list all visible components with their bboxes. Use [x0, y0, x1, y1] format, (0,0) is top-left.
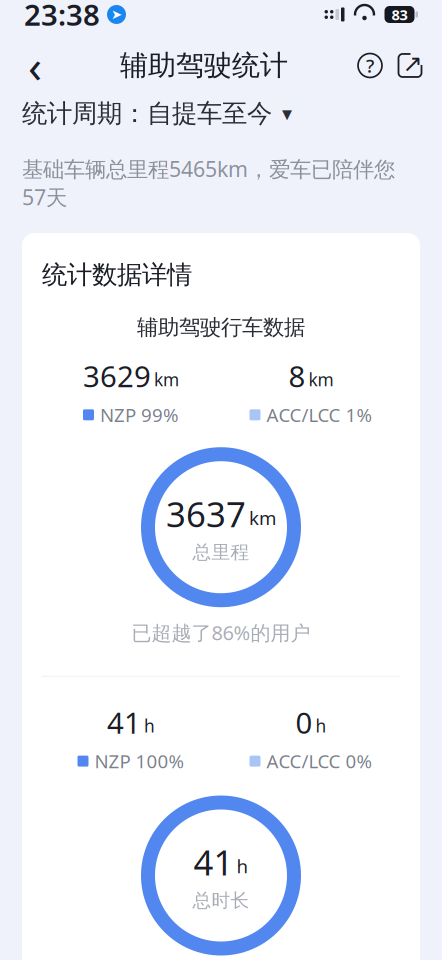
staticText: NZP 100% — [94, 749, 184, 773]
staticText: ▾ — [276, 102, 292, 125]
staticText: ➤ — [111, 7, 122, 22]
staticText: 统计周期： — [22, 98, 147, 129]
staticText: 8 — [288, 356, 305, 395]
staticText: ↗ — [402, 50, 422, 77]
staticText: 辅助驾驶统计 — [120, 48, 288, 83]
staticText: h — [236, 854, 248, 878]
staticText: 总里程 — [192, 541, 249, 564]
staticText: 3637 — [166, 491, 246, 537]
staticText: 23:38 — [24, 0, 100, 34]
staticText: km — [154, 368, 179, 391]
staticText: 已超越了86%的用户 — [131, 619, 310, 646]
staticText: 辅助驾驶行车数据 — [137, 314, 305, 340]
button[interactable]: Help — [350, 43, 390, 87]
staticText: 总时长 — [192, 889, 249, 912]
staticText: 统计数据详情 — [42, 259, 192, 290]
staticText: h — [315, 714, 326, 737]
staticText: 基础车辆总里程5465km，爱车已陪伴您57天 — [22, 154, 395, 211]
staticText: km — [249, 505, 276, 530]
staticText: km — [308, 368, 333, 391]
staticText: 3629 — [83, 356, 151, 395]
staticText: ACC/LCC 1% — [266, 402, 372, 427]
staticText: NZP 99% — [100, 402, 179, 427]
staticText: 41 — [193, 839, 233, 885]
button[interactable]: 统计周期： — [0, 90, 442, 136]
staticText: 41 — [107, 703, 141, 742]
staticText: 0 — [295, 703, 312, 742]
button[interactable]: Back — [12, 42, 58, 88]
staticText: ACC/LCC 0% — [266, 749, 372, 773]
staticText: h — [144, 714, 155, 737]
staticText: 83 — [391, 5, 407, 24]
button[interactable]: Share — [390, 43, 430, 87]
staticText: 自提车至今 — [147, 98, 272, 129]
staticText: ? — [366, 53, 374, 78]
staticText: ‹ — [28, 35, 42, 96]
